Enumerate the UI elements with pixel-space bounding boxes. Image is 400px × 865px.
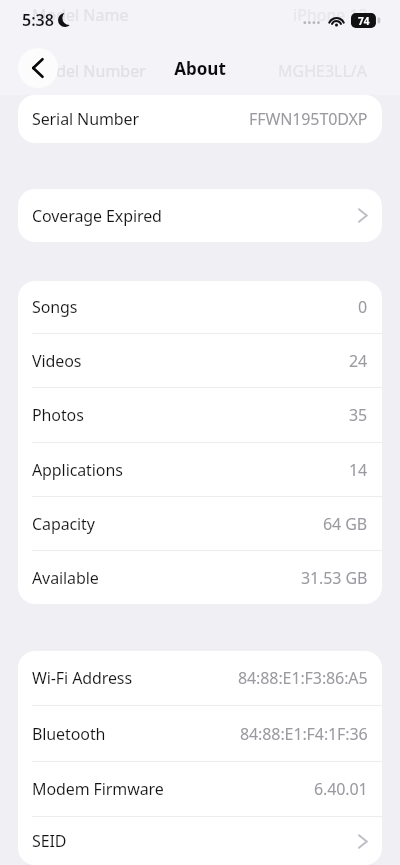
button[interactable]: SEID (18, 817, 382, 865)
button[interactable]: Photos (18, 388, 382, 442)
button[interactable]: Wi-Fi Address (18, 651, 382, 705)
button[interactable]: Videos (18, 334, 382, 387)
button[interactable]: Songs (18, 281, 382, 333)
staticText: 35 (349, 404, 368, 426)
staticText: Coverage Expired (32, 205, 162, 227)
staticText: 84:88:E1:F4:1F:36 (240, 723, 368, 745)
staticText: SEID (32, 830, 67, 852)
button[interactable]: Capacity (18, 497, 382, 550)
staticText: 64 GB (323, 513, 368, 535)
staticText: 31.53 GB (301, 567, 368, 589)
staticText: Bluetooth (32, 723, 106, 745)
button[interactable]: Back (18, 48, 58, 88)
staticText: 0 (358, 296, 368, 318)
staticText: Applications (32, 459, 123, 481)
button[interactable]: Applications (18, 443, 382, 496)
staticText: MGHE3LL/A (278, 60, 368, 82)
staticText: 14 (349, 459, 368, 481)
staticText: About (174, 57, 226, 80)
button[interactable]: Available (18, 551, 382, 604)
staticText: 74 (358, 14, 370, 28)
staticText: 5:38 (22, 9, 54, 31)
staticText: Videos (32, 350, 82, 372)
button[interactable]: Coverage Expired (18, 189, 382, 242)
staticText: Photos (32, 404, 84, 426)
staticText: 24 (349, 350, 368, 372)
staticText: Serial Number (32, 108, 139, 130)
staticText: FFWN195T0DXP (249, 108, 368, 130)
staticText: 6.40.01 (314, 778, 368, 800)
staticText: Available (32, 567, 99, 589)
staticText: Songs (32, 296, 78, 318)
button[interactable]: Modem Firmware (18, 762, 382, 816)
staticText: Wi-Fi Address (32, 667, 132, 689)
staticText: Capacity (32, 513, 95, 535)
staticText: Model Name (32, 4, 129, 26)
button[interactable]: Bluetooth (18, 706, 382, 761)
staticText: Modem Firmware (32, 778, 164, 800)
button[interactable]: Serial Number (18, 95, 382, 143)
staticText: iPhone 12 (293, 4, 368, 26)
staticText: 84:88:E1:F3:86:A5 (238, 667, 368, 689)
staticText: Model Number (32, 60, 146, 82)
